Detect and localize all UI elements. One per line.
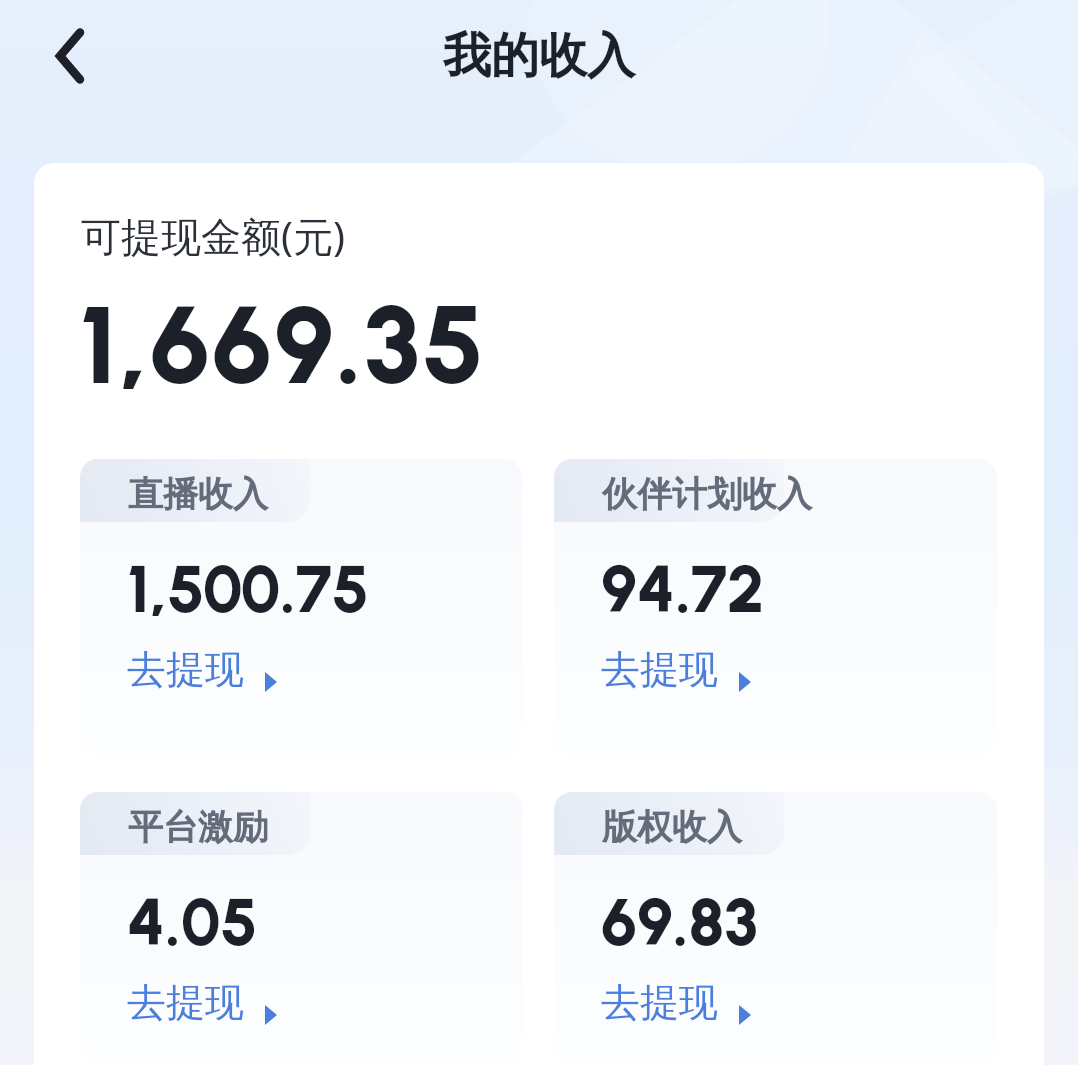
- staticText: 可提现金额(元): [81, 208, 345, 263]
- staticText: 版权收入: [602, 805, 742, 849]
- staticText: 1,669.35: [79, 279, 487, 410]
- staticText: 我的收入: [443, 26, 635, 86]
- staticText: 去提现: [127, 978, 244, 1027]
- staticText: 去提现: [127, 645, 244, 694]
- button[interactable]: 平台激励: [80, 792, 522, 1065]
- staticText: 1,500.75: [127, 550, 370, 628]
- staticText: 4.05: [127, 883, 259, 961]
- button[interactable]: 伙伴计划收入: [554, 459, 997, 756]
- button[interactable]: 直播收入: [80, 459, 522, 756]
- staticText: 直播收入: [128, 472, 268, 516]
- button[interactable]: Back: [34, 20, 106, 92]
- staticText: 平台激励: [128, 805, 268, 849]
- button[interactable]: 版权收入: [554, 792, 997, 1065]
- staticText: 伙伴计划收入: [602, 472, 812, 516]
- staticText: 94.72: [601, 550, 765, 628]
- staticText: 去提现: [601, 978, 718, 1027]
- staticText: 69.83: [601, 883, 758, 961]
- staticText: 去提现: [601, 645, 718, 694]
